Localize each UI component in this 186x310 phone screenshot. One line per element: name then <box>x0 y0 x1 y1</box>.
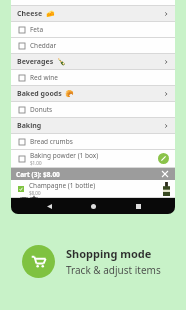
staticText: $1.00 <box>30 160 42 166</box>
button[interactable]: Feta <box>11 22 175 37</box>
staticText: Red wine <box>30 73 58 82</box>
button[interactable]: Cheddar <box>11 38 175 53</box>
button[interactable]: Beverages <box>11 54 175 69</box>
staticText: Cheese <box>17 9 43 19</box>
button[interactable]: Baking <box>11 118 175 133</box>
staticText: 🍾 <box>57 58 66 66</box>
button[interactable]: Champagne (1 bottle) <box>11 180 175 197</box>
button[interactable]: Red wine <box>11 70 175 85</box>
button[interactable]: Cheese <box>11 6 175 21</box>
staticText: Bread crumbs <box>30 137 73 146</box>
button[interactable]: Baked goods <box>11 86 175 101</box>
staticText: Champagne (1 bottle) <box>29 181 96 190</box>
button[interactable]: Bread crumbs <box>11 134 175 149</box>
button[interactable]: Close cart <box>160 169 170 179</box>
staticText: Feta <box>30 25 44 34</box>
button[interactable]: Home <box>86 199 100 213</box>
staticText: Shopping mode <box>66 246 152 261</box>
staticText: Baking powder (1 box) <box>30 151 99 160</box>
staticText: $8.00 <box>29 190 41 196</box>
button[interactable]: Back <box>42 199 56 213</box>
button[interactable]: Recents <box>131 199 145 213</box>
button[interactable]: Shopping cart <box>22 245 55 278</box>
staticText: Baked goods <box>17 89 62 99</box>
button[interactable]: Baking powder (1 box) <box>11 150 175 167</box>
staticText: 🥐 <box>65 90 74 98</box>
staticText: Baking <box>17 121 42 131</box>
staticText: Beverages <box>17 57 54 67</box>
staticText: Cheddar <box>30 41 57 50</box>
button[interactable]: Donuts <box>11 102 175 117</box>
staticText: Donuts <box>30 105 53 114</box>
staticText: 🧀 <box>46 10 55 18</box>
staticText: Cart (3): $8.00 <box>16 170 60 179</box>
staticText: Track & adjust items <box>66 263 161 277</box>
